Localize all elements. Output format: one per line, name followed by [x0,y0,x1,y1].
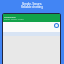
staticText: Reliable chatting [0,5,64,9]
staticText: CHATS STATUS CALLS [4,18,24,21]
button[interactable]: New chat [54,23,59,28]
staticText: WhatsApp [4,15,16,18]
staticText: Simple. Secure. [0,2,64,6]
